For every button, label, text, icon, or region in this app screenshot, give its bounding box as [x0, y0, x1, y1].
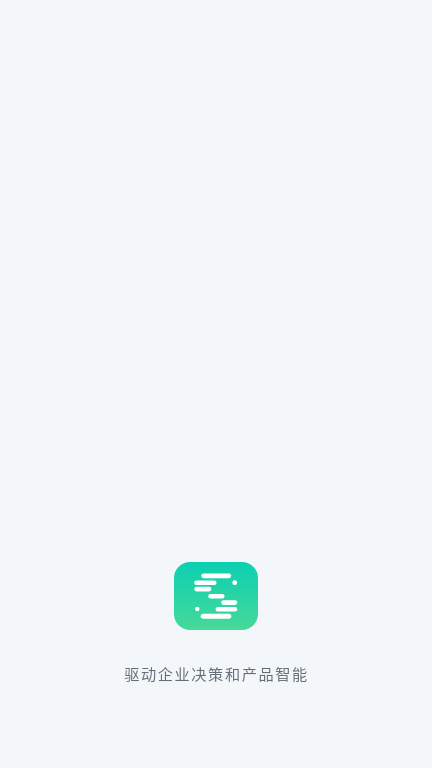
button[interactable]: 驱动企业决策和产品智能	[124, 662, 309, 684]
button[interactable]: App logo	[174, 562, 258, 630]
